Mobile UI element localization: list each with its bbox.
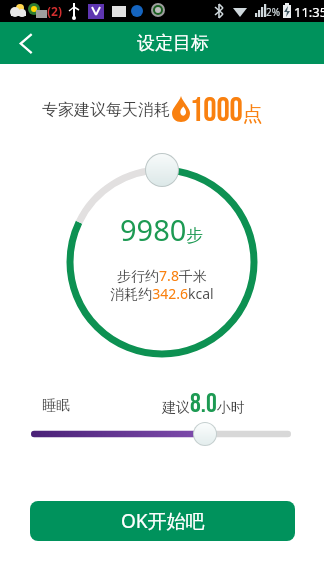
staticText: 设定目标 (137, 32, 209, 55)
staticText: 1000点 (190, 91, 263, 131)
staticText: 建议8.0小时 (162, 388, 245, 420)
button[interactable] (0, 22, 42, 64)
staticText: 睡眠 (42, 397, 70, 415)
button[interactable]: OK开始吧 (30, 501, 295, 541)
staticText: 消耗约342.6kcal (0, 284, 324, 303)
staticText: 9980步 (120, 210, 204, 249)
staticText: (2) (47, 3, 63, 19)
staticText: 2% (266, 5, 281, 19)
button[interactable] (25, 420, 299, 448)
staticText: OK开始吧 (121, 508, 205, 534)
staticText: 专家建议每天消耗 (42, 100, 170, 120)
button[interactable] (145, 153, 179, 187)
staticText: 步行约7.8千米 (0, 266, 324, 285)
staticText: 11:35 (294, 3, 324, 21)
